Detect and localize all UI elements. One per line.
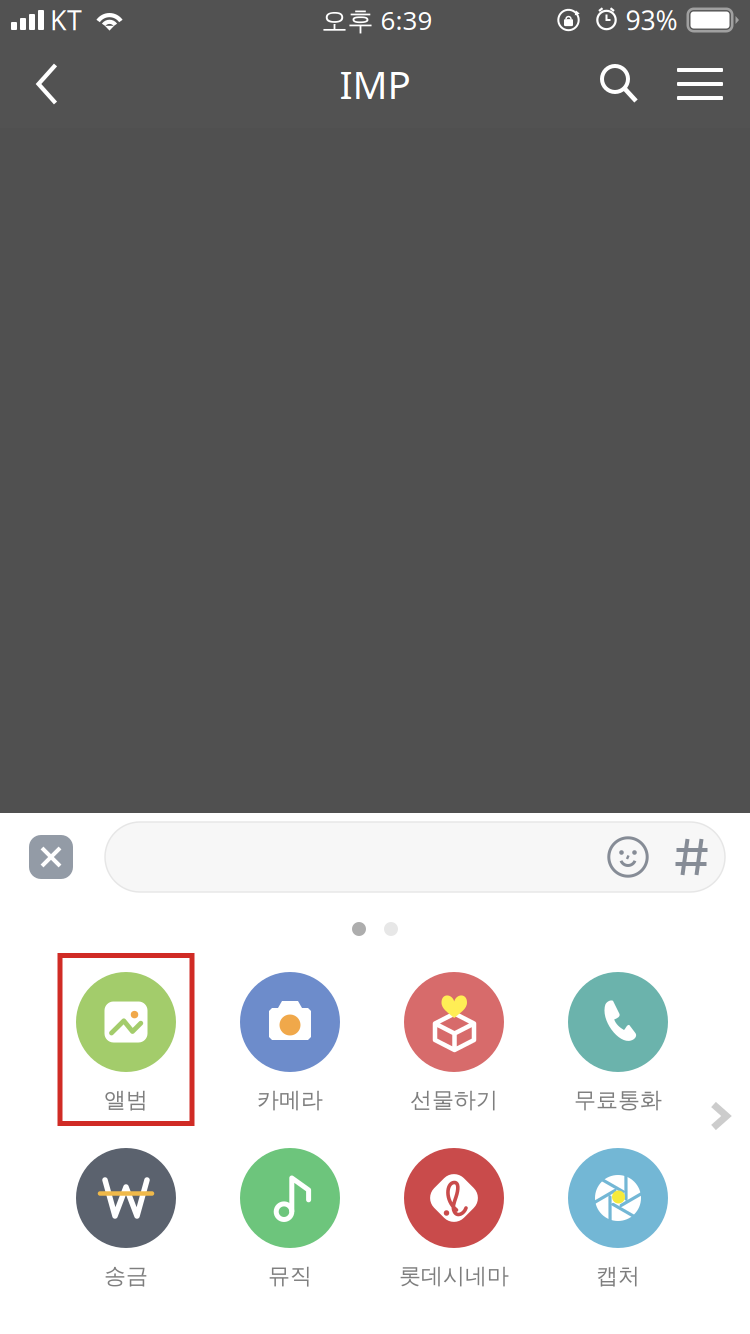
staticText: 무료통화 <box>574 1086 662 1114</box>
button[interactable]: 송금 <box>57 1129 194 1302</box>
button[interactable]: Close <box>29 822 73 892</box>
button[interactable]: Next page <box>710 1107 750 1131</box>
button[interactable]: 캡처 <box>549 1129 686 1302</box>
button[interactable]: Search <box>580 40 658 128</box>
button[interactable]: Menu <box>658 40 742 128</box>
staticText: 카메라 <box>257 1086 323 1114</box>
button[interactable]: 카메라 <box>221 953 358 1126</box>
staticText: IMP <box>339 58 410 110</box>
staticText: 캡처 <box>596 1262 640 1290</box>
button[interactable]: 앨범 <box>57 953 194 1126</box>
staticText: 오후 6:39 <box>321 2 432 38</box>
staticText: 앨범 <box>104 1086 148 1114</box>
button[interactable]: Emoji <box>597 822 659 892</box>
staticText: 93% <box>625 2 677 38</box>
button[interactable]: 롯데시네마 <box>385 1129 522 1302</box>
button[interactable]: 무료통화 <box>549 953 686 1126</box>
staticText: 송금 <box>104 1262 148 1290</box>
staticText: KT <box>50 2 82 38</box>
staticText: 뮤직 <box>268 1262 312 1290</box>
button[interactable]: 뮤직 <box>221 1129 358 1302</box>
staticText: 선물하기 <box>410 1086 498 1114</box>
button[interactable]: Back <box>12 40 82 128</box>
button[interactable]: Hashtag <box>659 822 725 892</box>
staticText: 롯데시네마 <box>399 1262 509 1290</box>
button[interactable]: 선물하기 <box>385 953 522 1126</box>
